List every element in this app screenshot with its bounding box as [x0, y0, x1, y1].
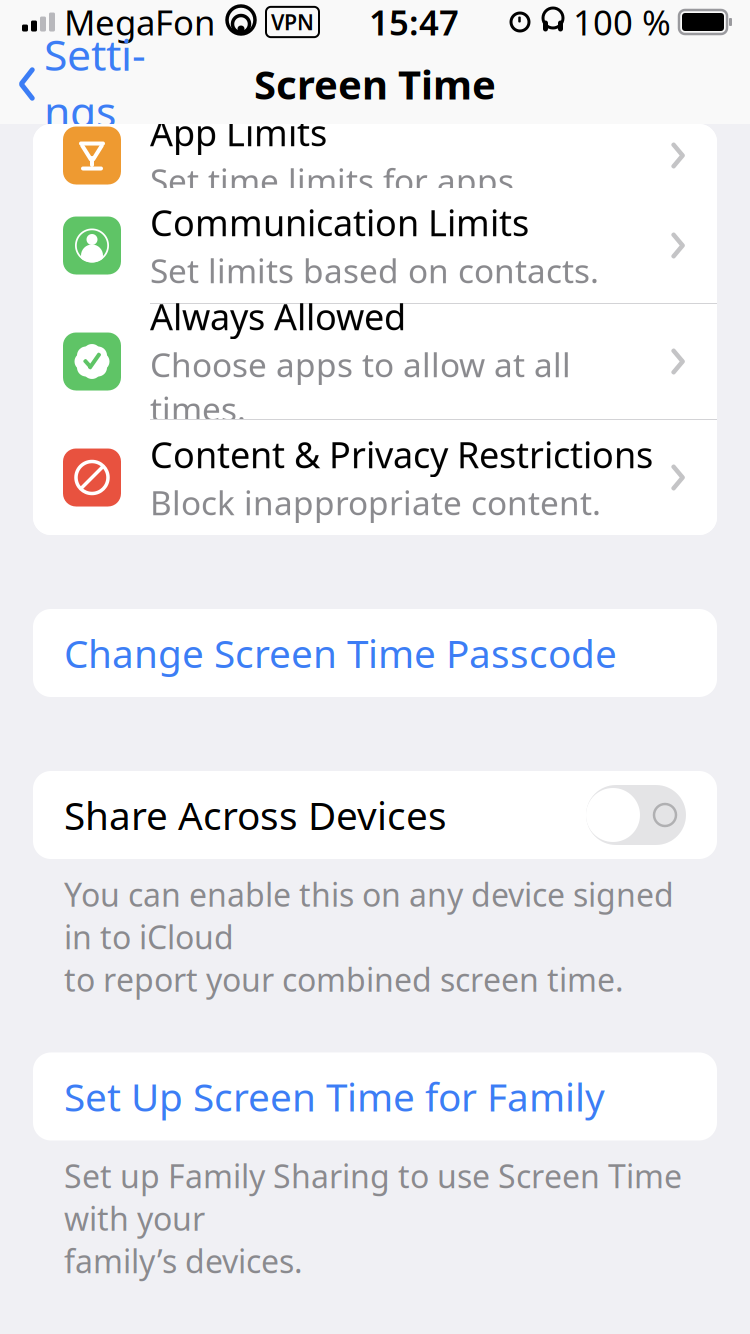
staticText: Share Across Devices: [64, 789, 447, 841]
button[interactable]: Change Screen Time Passcode: [33, 609, 717, 697]
staticText: Settings: [44, 26, 146, 139]
staticText: Choose apps to allow at all times.: [150, 342, 571, 431]
staticText: VPN: [271, 8, 314, 36]
button[interactable]: Content & Privacy Restrictions: [33, 420, 717, 535]
staticText: Always Allowed: [150, 292, 406, 340]
staticText: You can enable this on any device signed…: [64, 873, 674, 1000]
button[interactable]: Set Up Screen Time for Family: [33, 1052, 717, 1140]
button[interactable]: Communication Limits: [33, 188, 717, 304]
staticText: Set limits based on contacts.: [150, 248, 599, 293]
button[interactable]: Share Across Devices: [586, 785, 686, 845]
staticText: 15:47: [369, 0, 459, 45]
staticText: Set up Family Sharing to use Screen Time…: [64, 1154, 682, 1282]
button[interactable]: Settings: [0, 20, 164, 148]
staticText: App Limits: [150, 108, 327, 156]
staticText: Communication Limits: [150, 198, 529, 246]
staticText: Content & Privacy Restrictions: [150, 430, 653, 478]
button[interactable]: App Limits: [33, 98, 717, 214]
staticText: Screen Time: [254, 57, 496, 110]
staticText: MegaFon: [64, 0, 215, 45]
button[interactable]: Always Allowed: [33, 304, 717, 420]
staticText: Block inappropriate content.: [150, 480, 601, 525]
staticText: Set time limits for apps.: [150, 158, 523, 203]
staticText: Set Up Screen Time for Family: [64, 1071, 605, 1122]
staticText: 100 %: [573, 0, 671, 45]
staticText: Change Screen Time Passcode: [64, 627, 617, 679]
